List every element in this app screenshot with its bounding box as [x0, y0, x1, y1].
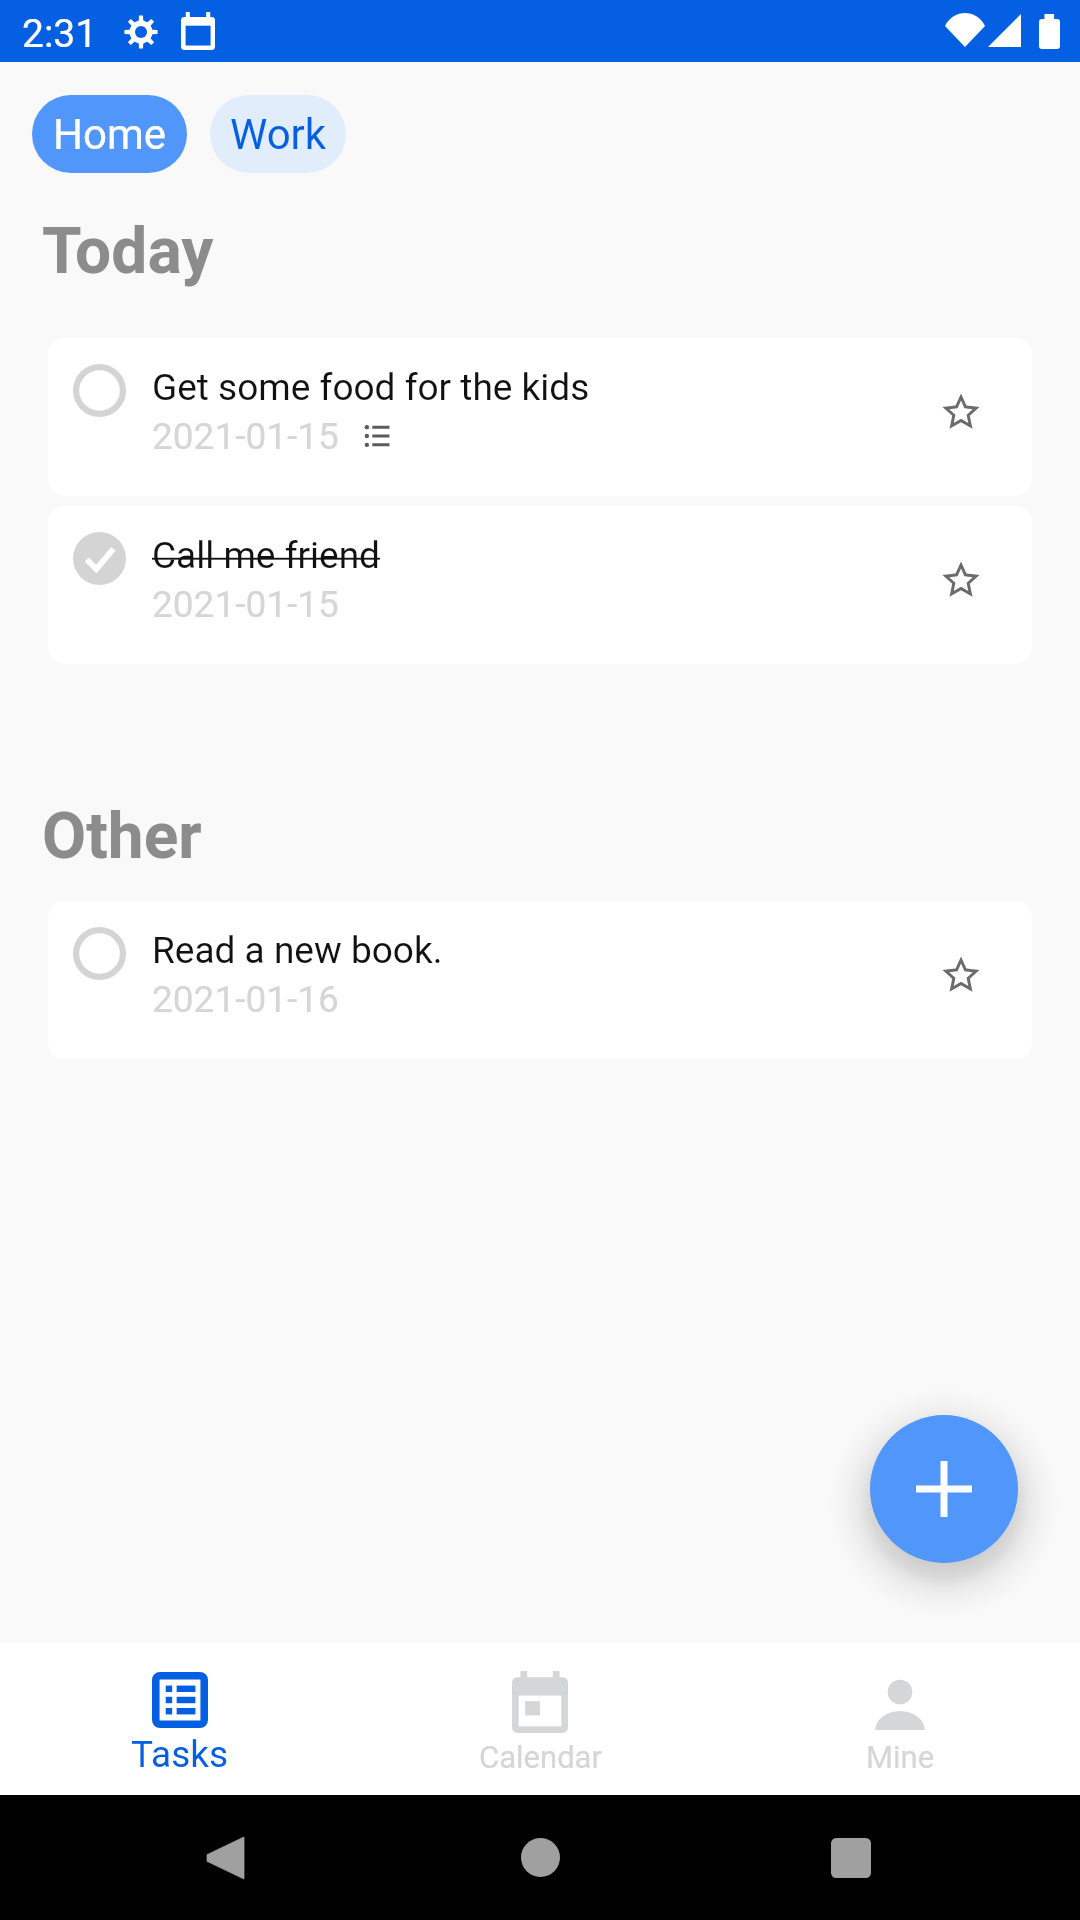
- button[interactable]: Mark done: [48, 338, 1032, 496]
- staticText: Read a new book.: [152, 929, 443, 972]
- button[interactable]: Calendar: [420, 1643, 660, 1795]
- staticText: 2021-01-15: [152, 583, 339, 626]
- button[interactable]: Mark done: [73, 927, 126, 980]
- staticText: Home: [53, 110, 167, 159]
- button[interactable]: Mark not done: [48, 506, 1032, 664]
- staticText: Calendar: [479, 1739, 602, 1775]
- staticText: 2:31: [22, 11, 98, 57]
- staticText: Tasks: [131, 1733, 229, 1776]
- staticText: Work: [230, 110, 327, 159]
- button[interactable]: Add task: [870, 1415, 1018, 1563]
- button[interactable]: Mark not done: [73, 532, 126, 585]
- button[interactable]: Favorite: [919, 371, 1003, 455]
- button[interactable]: Back: [105, 1795, 345, 1920]
- button[interactable]: Home: [420, 1795, 660, 1920]
- staticText: Other: [42, 799, 202, 874]
- button[interactable]: Home: [32, 95, 187, 173]
- button[interactable]: Favorite: [919, 539, 1003, 623]
- button[interactable]: Tasks: [60, 1643, 300, 1795]
- staticText: Get some food for the kids: [152, 366, 590, 409]
- button[interactable]: Mark done: [73, 364, 126, 417]
- staticText: Call me friend: [152, 534, 380, 577]
- staticText: Mine: [866, 1739, 935, 1775]
- button[interactable]: Mine: [780, 1643, 1020, 1795]
- staticText: 2021-01-15: [152, 415, 339, 458]
- button[interactable]: Work: [210, 95, 346, 173]
- button[interactable]: Favorite: [919, 934, 1003, 1018]
- staticText: 2021-01-16: [152, 978, 339, 1021]
- button[interactable]: Recents: [731, 1795, 971, 1920]
- staticText: Today: [42, 214, 214, 289]
- button[interactable]: Mark done: [48, 901, 1032, 1059]
